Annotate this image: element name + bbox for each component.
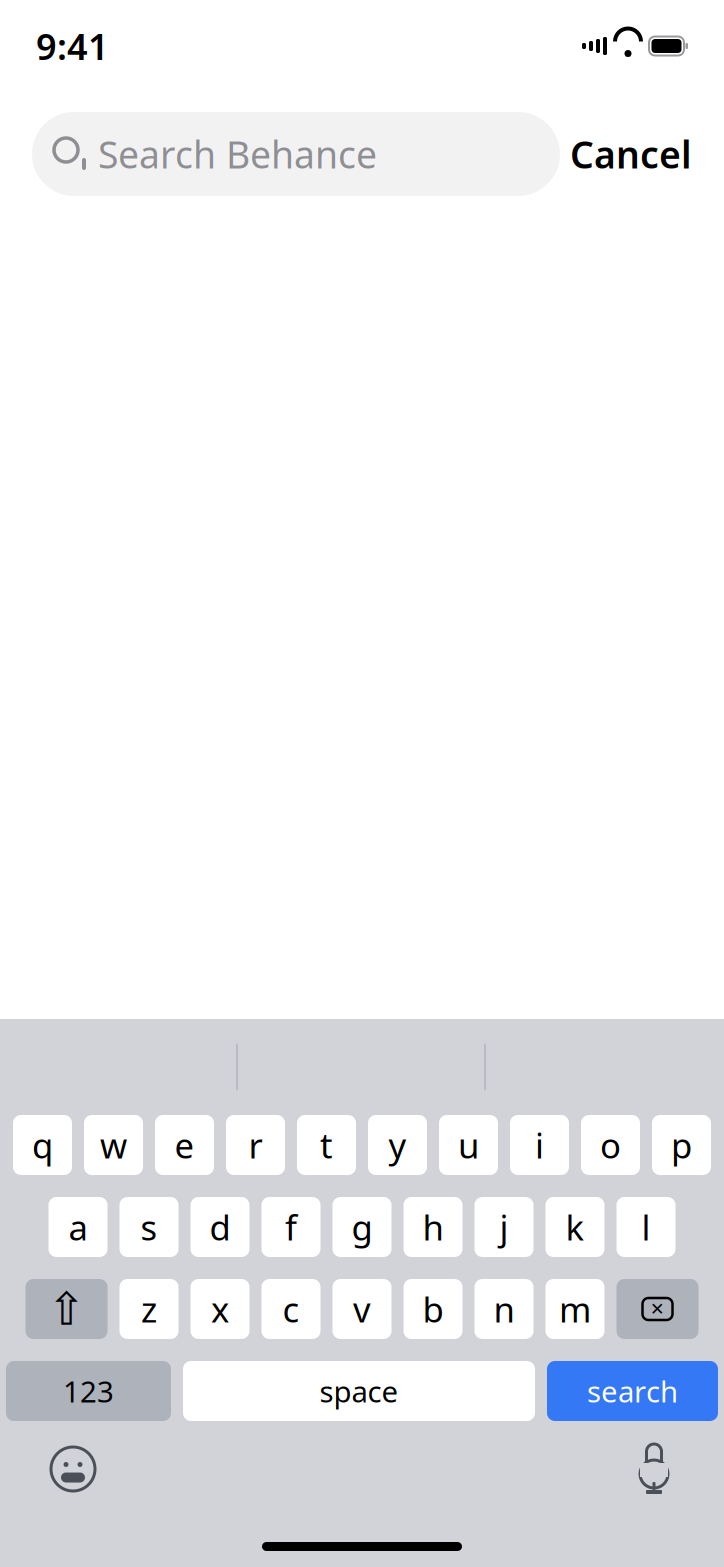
button[interactable]: d xyxy=(190,1197,249,1257)
button[interactable]: v xyxy=(332,1279,391,1339)
button[interactable]: t xyxy=(297,1115,356,1175)
button[interactable]: search xyxy=(547,1361,718,1421)
staticText: r xyxy=(248,1122,262,1168)
staticText: p xyxy=(671,1122,692,1168)
button[interactable]: w xyxy=(84,1115,143,1175)
staticText: 123 xyxy=(63,1371,114,1410)
button[interactable]: x xyxy=(190,1279,249,1339)
staticText: c xyxy=(282,1286,299,1332)
button[interactable]: r xyxy=(226,1115,285,1175)
button[interactable]: Emoji keyboard xyxy=(48,1444,98,1494)
staticText: m xyxy=(559,1286,591,1332)
staticText: b xyxy=(422,1286,443,1332)
staticText: x xyxy=(211,1286,229,1332)
button[interactable]: a xyxy=(48,1197,107,1257)
button[interactable]: u xyxy=(439,1115,498,1175)
staticText: l xyxy=(641,1204,650,1250)
button[interactable]: Search Behance xyxy=(32,112,560,196)
staticText: j xyxy=(499,1204,508,1250)
button[interactable]: o xyxy=(581,1115,640,1175)
button[interactable]: e xyxy=(155,1115,214,1175)
staticText: q xyxy=(32,1122,53,1168)
button[interactable]: c xyxy=(261,1279,320,1339)
button[interactable]: space xyxy=(183,1361,535,1421)
button[interactable]: f xyxy=(261,1197,320,1257)
staticText: space xyxy=(319,1371,398,1410)
button[interactable]: g xyxy=(332,1197,391,1257)
staticText: n xyxy=(493,1286,514,1332)
staticText: h xyxy=(422,1204,443,1250)
button[interactable]: q xyxy=(13,1115,72,1175)
button[interactable]: h xyxy=(403,1197,462,1257)
staticText: f xyxy=(285,1204,297,1250)
staticText: k xyxy=(565,1204,584,1250)
button[interactable]: m xyxy=(545,1279,604,1339)
button[interactable]: Cancel xyxy=(570,112,692,196)
staticText: i xyxy=(535,1122,544,1168)
staticText: ⇧ xyxy=(47,1283,85,1335)
button[interactable]: n xyxy=(474,1279,533,1339)
staticText: ✕ xyxy=(650,1299,665,1319)
staticText: y xyxy=(388,1122,406,1168)
button[interactable]: Shift xyxy=(25,1279,107,1339)
button[interactable]: s xyxy=(119,1197,178,1257)
staticText: o xyxy=(600,1122,621,1168)
staticText: z xyxy=(141,1286,157,1332)
staticText: v xyxy=(353,1286,371,1332)
staticText: Search Behance xyxy=(98,129,377,179)
button[interactable]: p xyxy=(652,1115,711,1175)
staticText: Cancel xyxy=(570,129,692,179)
staticText: w xyxy=(100,1122,127,1168)
staticText: g xyxy=(351,1204,372,1250)
button[interactable]: i xyxy=(510,1115,569,1175)
staticText: a xyxy=(68,1204,87,1250)
button[interactable]: Dictation xyxy=(632,1442,676,1496)
button[interactable]: b xyxy=(403,1279,462,1339)
button[interactable]: y xyxy=(368,1115,427,1175)
staticText: 9:41 xyxy=(36,22,109,70)
button[interactable]: l xyxy=(616,1197,675,1257)
staticText: t xyxy=(320,1122,333,1168)
staticText: d xyxy=(209,1204,230,1250)
button[interactable]: 123 xyxy=(6,1361,171,1421)
staticText: search xyxy=(587,1371,678,1410)
staticText: s xyxy=(140,1204,157,1250)
button[interactable]: j xyxy=(474,1197,533,1257)
staticText: e xyxy=(174,1122,194,1168)
staticText: u xyxy=(458,1122,479,1168)
button[interactable]: Delete xyxy=(616,1279,698,1339)
button[interactable]: z xyxy=(119,1279,178,1339)
button[interactable]: k xyxy=(545,1197,604,1257)
